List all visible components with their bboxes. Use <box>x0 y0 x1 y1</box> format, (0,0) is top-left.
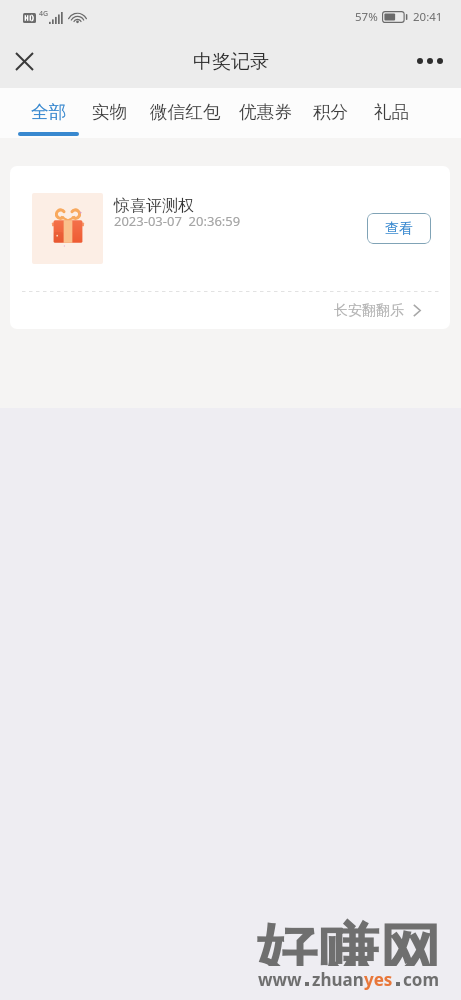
staticText: yes <box>364 968 393 991</box>
button[interactable]: 优惠券 <box>226 88 305 138</box>
staticText: 礼品 <box>374 101 410 123</box>
staticText: 微信红包 <box>150 101 221 123</box>
button[interactable]: 微信红包 <box>137 88 233 138</box>
staticText: 20:41 <box>413 9 443 25</box>
staticText: 长安翻翻乐 <box>334 302 404 320</box>
staticText: 全部 <box>31 101 67 123</box>
button[interactable]: 礼品 <box>361 88 422 138</box>
staticText: 优惠券 <box>239 101 292 123</box>
staticText: 惊喜评测权 <box>114 196 194 216</box>
staticText: 积分 <box>313 101 349 123</box>
button[interactable]: 积分 <box>300 88 361 138</box>
staticText: 实物 <box>92 101 128 123</box>
staticText: 好赚网 <box>255 914 441 966</box>
staticText: 查看 <box>385 220 413 238</box>
button[interactable]: 实物 <box>79 88 140 138</box>
button[interactable]: 全部 <box>18 88 79 138</box>
staticText: 中奖记录 <box>193 50 269 74</box>
button[interactable]: More options <box>407 38 453 84</box>
button[interactable]: Close <box>1 38 47 84</box>
staticText: com <box>403 968 439 991</box>
staticText: 2023-03-07 20:36:59 <box>114 212 241 230</box>
button[interactable]: 查看 <box>367 213 431 244</box>
staticText: www <box>258 968 302 991</box>
staticText: zhuan <box>312 968 364 991</box>
button[interactable]: 长安翻翻乐 <box>10 292 421 329</box>
staticText: 57% <box>355 9 378 25</box>
staticText: 4G <box>39 9 49 19</box>
